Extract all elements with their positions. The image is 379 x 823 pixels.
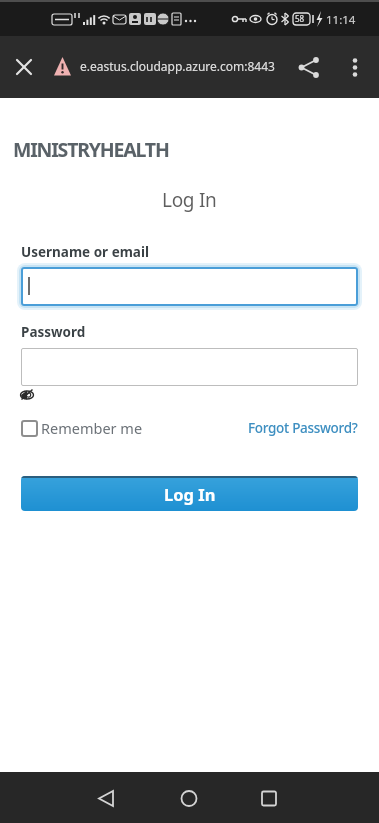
staticText: 58: [295, 13, 305, 24]
button[interactable]: [339, 51, 371, 83]
staticText: Log In: [164, 483, 216, 505]
staticText: Log In: [162, 187, 217, 213]
staticText: Password: [21, 323, 86, 341]
button[interactable]: [21, 348, 358, 386]
button[interactable]: [20, 389, 34, 400]
staticText: Username or email: [21, 243, 150, 261]
button[interactable]: [248, 778, 290, 820]
button[interactable]: e.eastus.cloudapp.azure.com:8443: [80, 58, 275, 74]
button[interactable]: [86, 778, 128, 820]
button[interactable]: Log In: [21, 476, 358, 511]
staticText: Remember me: [41, 418, 143, 438]
staticText: MINISTRYHEALTH: [13, 136, 169, 163]
button[interactable]: Forgot Password?: [248, 419, 358, 437]
button[interactable]: [168, 778, 210, 820]
button[interactable]: [292, 51, 324, 83]
button[interactable]: [21, 267, 358, 306]
button[interactable]: Remember me: [21, 418, 143, 438]
staticText: 11:14: [326, 12, 356, 28]
button[interactable]: [8, 51, 40, 83]
